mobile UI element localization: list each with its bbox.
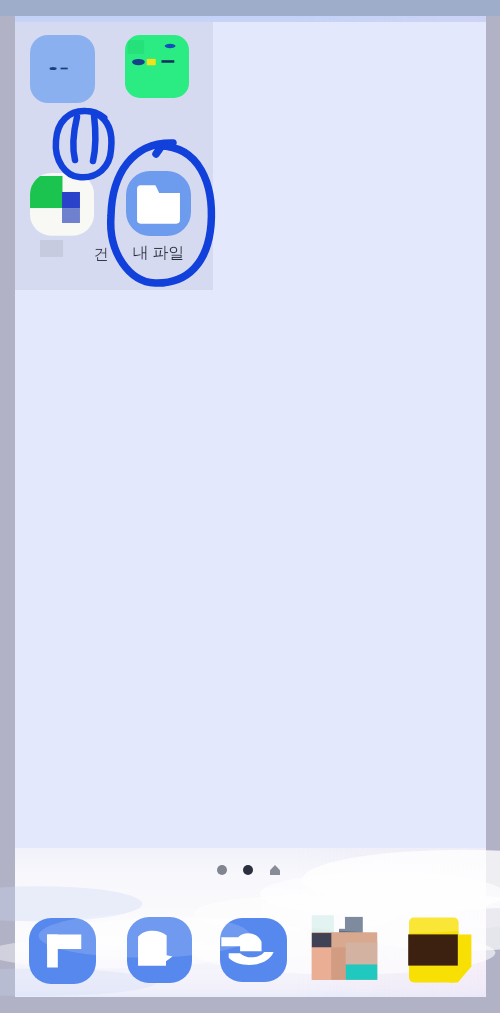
button[interactable]: Sync <box>220 918 287 982</box>
button[interactable]: KakaoTalk <box>405 912 485 992</box>
button[interactable] <box>126 171 191 236</box>
button[interactable]: Documents <box>127 917 192 983</box>
button[interactable]: App <box>26 168 102 262</box>
button[interactable]: App <box>30 35 95 103</box>
button[interactable]: Page 2 <box>243 865 253 875</box>
button[interactable]: App <box>125 35 189 98</box>
button[interactable]: Home page <box>270 865 280 875</box>
staticText: 건 <box>94 245 109 264</box>
button[interactable]: Page 1 <box>217 865 227 875</box>
button[interactable]: Flipboard <box>29 918 96 984</box>
staticText: 내 파일 <box>132 241 185 263</box>
button[interactable]: Gallery <box>305 905 390 990</box>
